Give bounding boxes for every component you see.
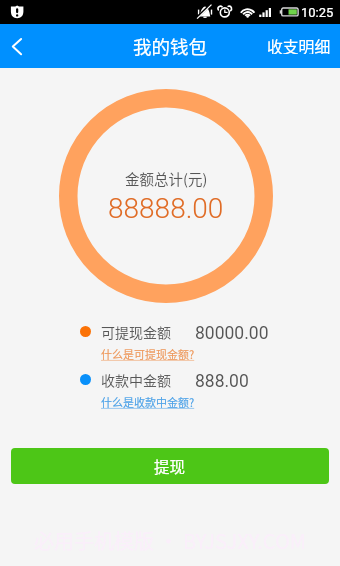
button[interactable]: 收支明细: [258, 24, 340, 68]
staticText: 金额总计(元): [125, 168, 208, 189]
staticText: 收款中金额: [101, 370, 171, 390]
button[interactable]: 什么是可提现金额?: [101, 346, 195, 362]
staticText: 888.00: [195, 371, 249, 392]
staticText: 收支明细: [267, 35, 331, 54]
staticText: 什么是可提现金额?: [101, 346, 195, 362]
staticText: 88888.00: [108, 192, 224, 225]
staticText: 我的钱包: [133, 33, 208, 60]
staticText: 提现: [154, 455, 186, 477]
button[interactable]: 什么是收款中金额?: [101, 394, 195, 410]
staticText: 可提现金额: [101, 322, 171, 342]
button[interactable]: 提现: [11, 448, 329, 484]
staticText: 10:25: [301, 5, 334, 20]
staticText: 什么是收款中金额?: [101, 394, 195, 410]
staticText: 80000.00: [195, 323, 269, 344]
button[interactable]: Back: [0, 24, 44, 68]
